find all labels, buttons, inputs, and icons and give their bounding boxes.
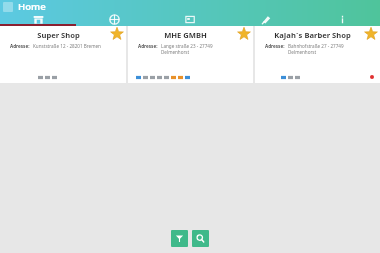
staticText: Adresse:	[265, 43, 285, 49]
staticText: Delmenhorst	[161, 49, 190, 55]
button[interactable]: Favourite	[110, 27, 124, 41]
button[interactable]: Filter	[171, 230, 188, 247]
button[interactable]: Offers	[228, 13, 304, 26]
staticText: Bahnhofstraße 27 - 27749	[288, 43, 344, 49]
staticText: MHE GMBH	[164, 30, 207, 40]
button[interactable]: More	[304, 13, 380, 26]
button[interactable]: Shops	[0, 13, 76, 26]
button[interactable]: MHE GMBH	[128, 26, 253, 83]
staticText: Home	[18, 0, 46, 13]
button[interactable]: Info	[76, 13, 152, 26]
staticText: Lange straße 23 - 27749	[161, 43, 213, 49]
button[interactable]: Cards	[152, 13, 228, 26]
staticText: KaJah`s Barber Shop	[274, 30, 351, 40]
staticText: Delmenhorst	[288, 49, 317, 55]
button[interactable]: Super Shop	[0, 26, 126, 83]
staticText: Kunststraße 12 - 28201 Bremen	[33, 43, 101, 49]
staticText: Adresse:	[10, 43, 30, 49]
button[interactable]: Search	[192, 230, 209, 247]
button[interactable]: KaJah`s Barber Shop	[255, 26, 380, 83]
button[interactable]: Favourite	[237, 27, 251, 41]
staticText: Adresse:	[138, 43, 158, 49]
staticText: Super Shop	[37, 30, 80, 40]
button[interactable]: Favourite	[364, 27, 378, 41]
